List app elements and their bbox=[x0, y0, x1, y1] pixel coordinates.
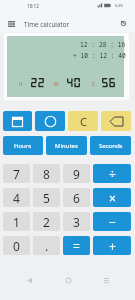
button[interactable]: . bbox=[33, 236, 60, 255]
button[interactable]: − bbox=[93, 212, 131, 231]
button[interactable]: = bbox=[63, 236, 90, 255]
button[interactable]: 8 bbox=[33, 164, 60, 183]
button[interactable]: Back bbox=[20, 271, 38, 289]
button[interactable]: Hours bbox=[3, 136, 43, 155]
staticText: H. bbox=[19, 81, 24, 87]
staticText: − bbox=[109, 214, 116, 230]
staticText: 8 bbox=[43, 166, 50, 182]
staticText: Minutes bbox=[55, 142, 78, 150]
button[interactable]: Backspace bbox=[101, 111, 131, 131]
staticText: 1 bbox=[13, 214, 20, 230]
staticText: 12 : 28 : 16 bbox=[80, 40, 126, 49]
staticText: Seconds bbox=[99, 142, 123, 150]
button[interactable]: 5 bbox=[33, 188, 60, 207]
button[interactable]: Pick time bbox=[35, 111, 65, 131]
staticText: + 10 : 12 : 40 bbox=[73, 51, 126, 60]
staticText: M. bbox=[54, 81, 60, 87]
button[interactable]: 9 bbox=[63, 164, 90, 183]
staticText: Hours bbox=[14, 142, 32, 150]
staticText: 0 bbox=[13, 238, 20, 254]
staticText: + bbox=[109, 238, 116, 254]
staticText: = bbox=[73, 238, 80, 254]
staticText: . bbox=[45, 238, 49, 254]
button[interactable]: + bbox=[93, 236, 131, 255]
staticText: 10:12 bbox=[27, 3, 39, 9]
button[interactable]: 2 bbox=[33, 212, 60, 231]
button[interactable]: C bbox=[68, 111, 98, 131]
staticText: × bbox=[109, 190, 116, 206]
button[interactable]: 4 bbox=[3, 188, 30, 207]
staticText: 64% bbox=[115, 3, 124, 9]
button[interactable]: 1 bbox=[3, 212, 30, 231]
staticText: 5 bbox=[43, 190, 50, 206]
button[interactable]: Seconds bbox=[90, 136, 131, 155]
staticText: 9 bbox=[73, 166, 80, 182]
staticText: 7 bbox=[13, 166, 20, 182]
button[interactable]: Home bbox=[59, 271, 77, 289]
staticText: S. bbox=[92, 81, 96, 87]
button[interactable]: ÷ bbox=[93, 164, 131, 183]
button[interactable]: Pick date bbox=[3, 111, 32, 131]
button[interactable]: 0 bbox=[3, 236, 30, 255]
button[interactable]: History bbox=[116, 16, 131, 31]
staticText: 2 bbox=[43, 214, 50, 230]
button[interactable]: Minutes bbox=[46, 136, 87, 155]
button[interactable]: Menu bbox=[3, 16, 19, 31]
button[interactable]: 6 bbox=[63, 188, 90, 207]
staticText: ÷ bbox=[109, 166, 116, 182]
staticText: 4 bbox=[13, 190, 20, 206]
staticText: C bbox=[80, 114, 87, 129]
button[interactable]: Recents bbox=[97, 271, 115, 289]
button[interactable]: 3 bbox=[63, 212, 90, 231]
button[interactable]: 7 bbox=[3, 164, 30, 183]
staticText: 6 bbox=[73, 190, 80, 206]
staticText: 3 bbox=[73, 214, 80, 230]
button[interactable]: × bbox=[93, 188, 131, 207]
staticText: Time calculator bbox=[24, 20, 70, 29]
